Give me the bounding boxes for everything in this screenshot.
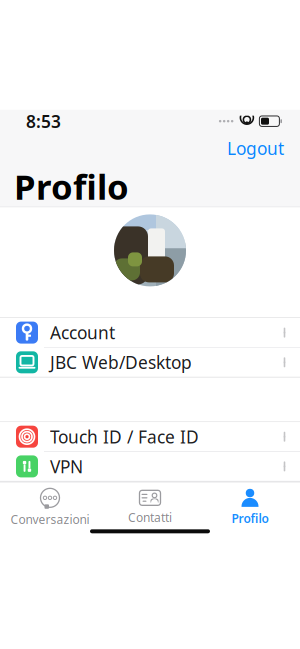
staticText: Conversazioni — [10, 511, 89, 527]
button[interactable]: Account — [0, 318, 300, 347]
button[interactable]: JBC Web/Desktop — [0, 348, 300, 377]
button[interactable]: Touch ID / Face ID — [0, 422, 300, 451]
button[interactable]: Profilo — [200, 485, 300, 529]
staticText: Profilo — [14, 163, 129, 209]
staticText: Logout — [227, 137, 284, 160]
staticText: Account — [50, 321, 115, 344]
button[interactable]: Contatti — [100, 485, 200, 529]
button[interactable]: VPN — [0, 452, 300, 481]
staticText: JBC Web/Desktop — [50, 351, 192, 374]
staticText: 8:53 — [26, 110, 61, 133]
staticText: Contatti — [128, 509, 172, 525]
staticText: Profilo — [231, 510, 268, 526]
button[interactable]: Logout — [221, 133, 290, 164]
staticText: VPN — [50, 455, 83, 478]
button[interactable]: Conversazioni — [0, 485, 100, 529]
staticText: Touch ID / Face ID — [50, 425, 199, 448]
